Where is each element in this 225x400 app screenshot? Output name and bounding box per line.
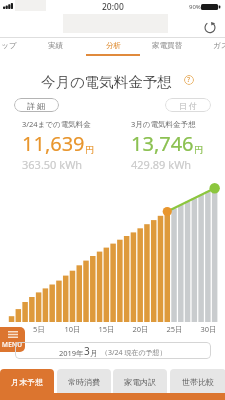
staticText: 20日 — [132, 324, 149, 334]
staticText: 日 付 — [179, 100, 198, 111]
staticText: 20:00 — [102, 1, 124, 13]
staticText: 月 — [90, 349, 98, 358]
staticText: 429.89 kWh — [131, 157, 192, 172]
staticText: 円 — [194, 144, 203, 155]
staticText: 分析 — [106, 41, 121, 50]
staticText: 3/24までの電気料金 — [22, 119, 91, 129]
button[interactable]: ガス — [194, 37, 225, 56]
staticText: 詳 細 — [27, 100, 46, 111]
staticText: MENU — [2, 340, 23, 349]
button[interactable]: 月末予想 — [0, 369, 54, 394]
staticText: （3/24 現在の予想） — [101, 348, 167, 358]
staticText: 今月の電気料金予想 — [41, 73, 172, 91]
button[interactable]: 詳 細 — [14, 98, 59, 112]
staticText: ? — [187, 75, 191, 85]
staticText: 11,639 — [22, 130, 85, 157]
staticText: 家電内訳 — [124, 377, 156, 387]
button[interactable]: 家電内訳 — [113, 369, 167, 394]
staticText: 10日 — [64, 324, 81, 334]
button[interactable]: 分析 — [87, 37, 140, 56]
staticText: 家電買替 — [152, 41, 182, 50]
staticText: 363.50 kWh — [22, 157, 83, 172]
staticText: 13,746 — [131, 130, 194, 157]
button[interactable]: 世帯比較 — [170, 369, 225, 394]
button[interactable]: Menu — [0, 327, 25, 352]
staticText: 実績 — [48, 41, 63, 50]
button[interactable]: 2019年 — [15, 342, 211, 359]
staticText: 90% — [189, 3, 201, 11]
staticText: 15日 — [98, 324, 115, 334]
staticText: 円 — [85, 144, 94, 155]
staticText: 3 — [84, 344, 90, 358]
staticText: 30日 — [200, 324, 217, 334]
button[interactable]: ップ — [0, 37, 35, 56]
staticText: 世帯比較 — [182, 377, 214, 387]
staticText: 2019年 — [59, 348, 84, 358]
button[interactable]: 日 付 — [165, 98, 211, 112]
staticText: 25日 — [166, 324, 183, 334]
staticText: ップ — [1, 41, 17, 50]
button[interactable]: Reload page — [201, 18, 219, 36]
staticText: 常時消費 — [68, 377, 100, 387]
button[interactable]: 常時消費 — [57, 369, 111, 394]
staticText: 5日 — [33, 324, 45, 334]
staticText: 月末予想 — [11, 377, 43, 387]
button[interactable]: 実績 — [29, 37, 82, 56]
button[interactable]: Help — [184, 75, 194, 85]
button[interactable]: 家電買替 — [140, 37, 193, 56]
staticText: ガス — [213, 41, 225, 50]
button[interactable]: 今月の電気料金予想 — [41, 73, 172, 91]
staticText: 3月の電気料金予想 — [131, 119, 196, 129]
